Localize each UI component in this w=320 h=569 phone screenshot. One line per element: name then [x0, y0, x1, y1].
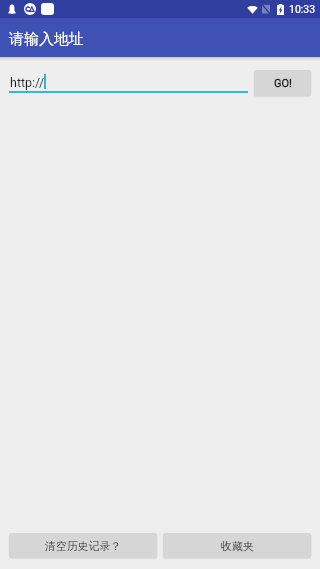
- staticText: 收藏夹: [221, 540, 254, 554]
- button[interactable]: 收藏夹: [163, 533, 311, 558]
- button[interactable]: http://: [9, 73, 248, 109]
- staticText: 10:33: [289, 3, 316, 15]
- button[interactable]: GO!: [254, 70, 311, 96]
- button[interactable]: 清空历史记录？: [9, 533, 157, 558]
- staticText: 请输入地址: [9, 30, 84, 49]
- staticText: 清空历史记录？: [45, 540, 122, 554]
- staticText: http://: [10, 75, 45, 90]
- staticText: GO!: [274, 77, 292, 90]
